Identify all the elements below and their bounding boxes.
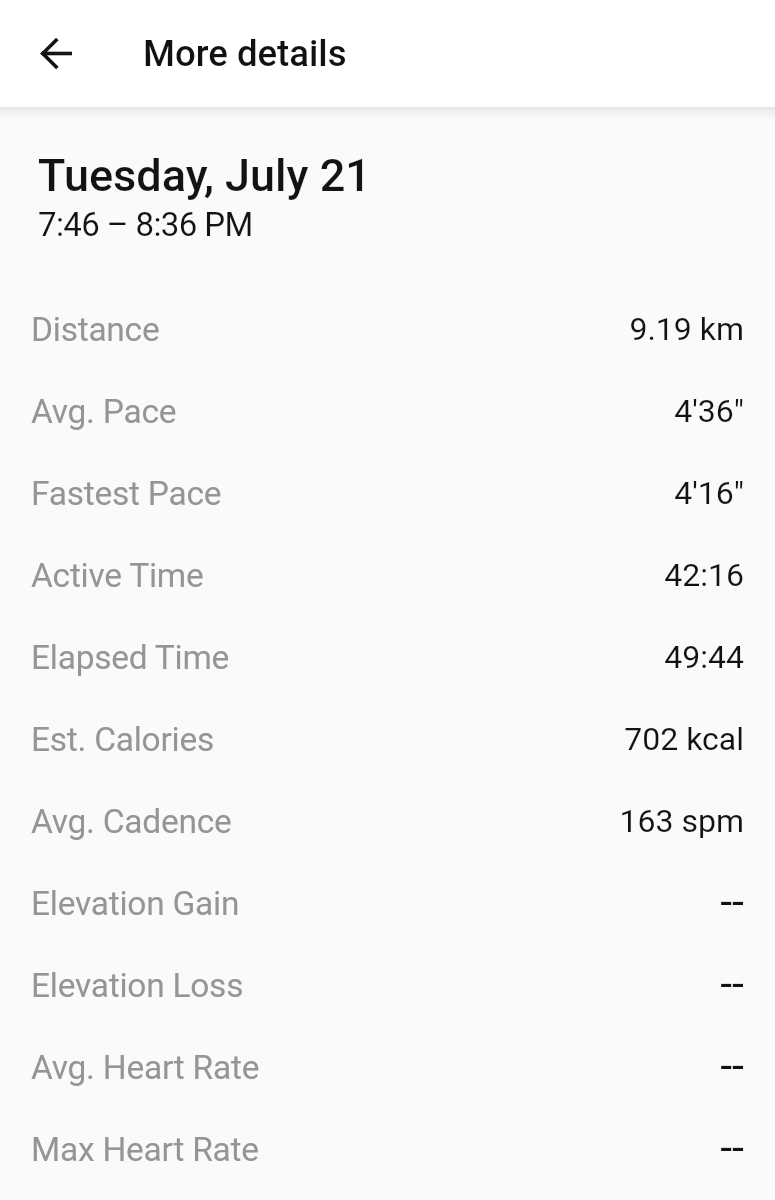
button[interactable]: Elapsed Time (0, 616, 775, 698)
staticText: -- (720, 1040, 744, 1090)
staticText: Avg. Cadence (31, 802, 232, 841)
staticText: Active Time (31, 556, 204, 595)
staticText: -- (720, 876, 744, 926)
button[interactable]: Est. Calories (0, 698, 775, 780)
staticText: Elapsed Time (31, 638, 230, 677)
staticText: 42:16 (664, 556, 744, 594)
staticText: 4'16" (674, 474, 744, 512)
staticText: 9.19 km (629, 310, 744, 348)
button[interactable]: Max Heart Rate (0, 1108, 775, 1190)
staticText: Est. Calories (31, 720, 215, 759)
button[interactable]: Elevation Gain (0, 862, 775, 944)
staticText: Distance (31, 310, 160, 349)
staticText: Elevation Loss (31, 966, 244, 1005)
button[interactable]: Avg. Pace (0, 370, 775, 452)
staticText: Fastest Pace (31, 474, 222, 513)
staticText: Elevation Gain (31, 884, 240, 923)
staticText: 4'36" (674, 392, 744, 430)
button[interactable]: Back (12, 9, 100, 97)
button[interactable]: Avg. Heart Rate (0, 1026, 775, 1108)
staticText: -- (720, 1122, 744, 1172)
staticText: More details (143, 32, 347, 75)
staticText: 163 spm (619, 802, 744, 840)
staticText: Tuesday, July 21 (38, 149, 371, 202)
staticText: -- (720, 958, 744, 1008)
staticText: 49:44 (664, 638, 744, 676)
button[interactable]: Distance (0, 288, 775, 370)
staticText: Max Heart Rate (31, 1130, 259, 1169)
staticText: 7:46 – 8:36 PM (38, 205, 253, 244)
button[interactable]: Active Time (0, 534, 775, 616)
staticText: 702 kcal (624, 720, 744, 758)
button[interactable]: Fastest Pace (0, 452, 775, 534)
button[interactable]: Elevation Loss (0, 944, 775, 1026)
button[interactable]: Avg. Cadence (0, 780, 775, 862)
staticText: Avg. Pace (31, 392, 177, 431)
staticText: Avg. Heart Rate (31, 1048, 260, 1087)
